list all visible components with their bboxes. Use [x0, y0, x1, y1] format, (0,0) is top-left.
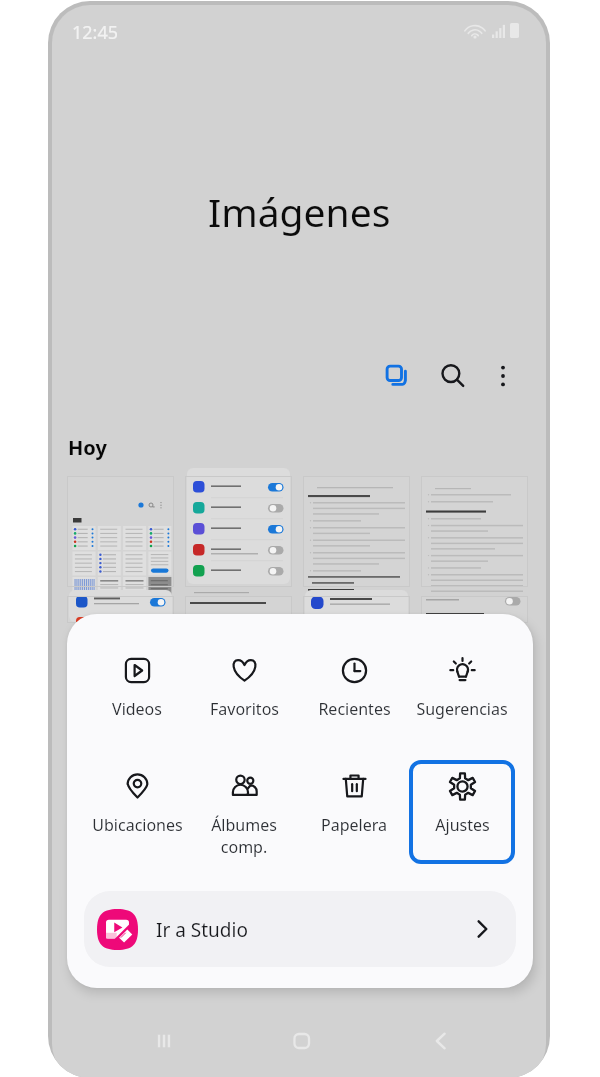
button[interactable]: Photo — [185, 596, 292, 623]
button[interactable]: Recientes — [301, 644, 407, 748]
button[interactable]: Papelera — [301, 760, 407, 864]
staticText: Favoritos — [210, 698, 279, 720]
button[interactable]: Photo — [303, 596, 410, 623]
staticText: Imágenes — [208, 185, 391, 238]
button[interactable]: Home — [267, 1013, 337, 1069]
button[interactable]: Videos — [84, 644, 190, 748]
staticText: Sugerencias — [416, 698, 508, 720]
staticText: 12:45 — [72, 20, 119, 45]
button[interactable]: Photo — [303, 476, 410, 587]
button[interactable]: Photo — [421, 596, 528, 623]
button[interactable]: Recents — [129, 1013, 199, 1069]
button[interactable]: Photo — [185, 476, 292, 587]
staticText: Recientes — [318, 698, 391, 720]
staticText: Ajustes — [435, 814, 490, 836]
staticText: Papelera — [321, 814, 387, 836]
button[interactable]: Photo — [67, 596, 174, 623]
staticText: Videos — [112, 698, 162, 720]
staticText: Ir a Studio — [156, 917, 248, 943]
button[interactable]: Favoritos — [191, 644, 297, 748]
button[interactable]: Ubicaciones — [84, 760, 190, 864]
button[interactable]: Photo — [67, 476, 174, 587]
button[interactable]: Ajustes — [409, 760, 515, 864]
staticText: Hoy — [68, 434, 107, 461]
staticText: Álbumes comp. — [211, 814, 277, 858]
staticText: Ubicaciones — [92, 814, 183, 836]
button[interactable]: More options — [478, 351, 528, 401]
button[interactable]: Photo — [421, 476, 528, 587]
button[interactable]: Select mode — [372, 351, 422, 401]
button[interactable]: Ir a Studio — [84, 891, 516, 967]
button[interactable]: Sugerencias — [409, 644, 515, 748]
button[interactable]: Álbumes comp. — [191, 760, 297, 864]
button[interactable]: Search — [428, 351, 478, 401]
